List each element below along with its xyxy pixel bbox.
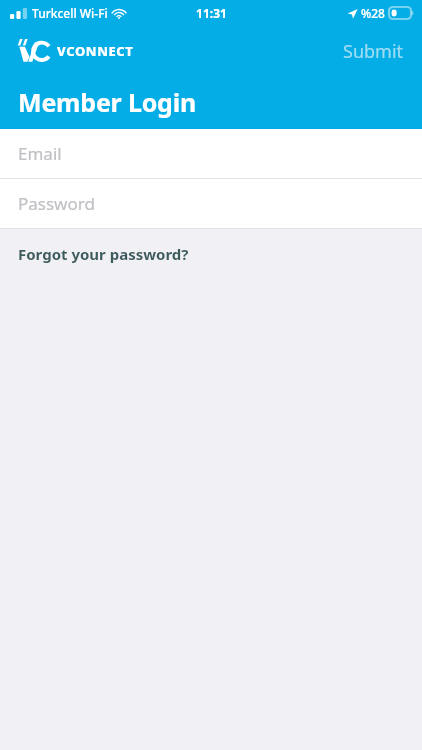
staticText: Forgot your password?: [18, 244, 189, 264]
staticText: Member Login: [18, 85, 197, 119]
button[interactable]: VConnect home: [16, 36, 134, 66]
staticText: VCONNECT: [57, 42, 134, 60]
button[interactable]: Forgot your password?: [0, 229, 422, 279]
staticText: 11:31: [196, 5, 227, 21]
button[interactable]: Submit: [341, 35, 406, 68]
button[interactable]: Password: [0, 179, 422, 228]
staticText: Email: [18, 142, 62, 165]
staticText: %28: [361, 5, 385, 21]
button[interactable]: Email: [0, 129, 422, 178]
staticText: Turkcell Wi-Fi: [32, 5, 108, 21]
staticText: Submit: [343, 39, 404, 64]
staticText: Password: [18, 192, 95, 215]
